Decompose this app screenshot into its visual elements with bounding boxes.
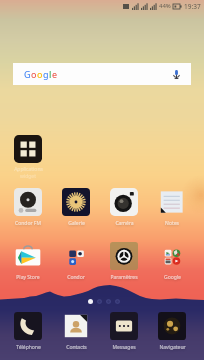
staticText: G	[24, 68, 31, 80]
staticText: Contacts	[66, 344, 87, 351]
staticText: widget	[20, 173, 36, 180]
button[interactable]: Play Store	[14, 242, 42, 281]
button[interactable]: Téléphone	[14, 312, 42, 351]
button[interactable]: Google	[158, 242, 186, 281]
staticText: Galerie	[68, 220, 85, 227]
button[interactable]: Voice search	[171, 69, 182, 80]
staticText: o	[31, 68, 37, 80]
button[interactable]	[88, 299, 120, 304]
staticText: Applications	[14, 166, 43, 173]
staticText: Navigateur	[159, 344, 186, 351]
staticText: l	[49, 68, 52, 80]
staticText: g	[43, 68, 49, 80]
button[interactable]: Galerie	[62, 188, 90, 227]
button[interactable]: Contacts	[62, 312, 90, 351]
staticText: Notes	[165, 220, 179, 227]
button[interactable]: Notes	[158, 188, 186, 227]
button[interactable]: Caméra	[110, 188, 138, 227]
staticText: 44%	[159, 2, 171, 10]
button[interactable]	[14, 135, 42, 163]
staticText: 19:37	[184, 2, 201, 11]
staticText: Paramètres	[110, 274, 138, 281]
staticText: Téléphone	[16, 344, 41, 351]
staticText: Google	[164, 274, 181, 281]
staticText: Caméra	[115, 220, 134, 227]
staticText: o	[37, 68, 43, 80]
staticText: Condor	[67, 274, 85, 281]
button[interactable]: Condor	[62, 242, 90, 281]
button[interactable]: Navigateur	[158, 312, 186, 351]
staticText: e	[52, 68, 58, 80]
staticText: Condor FM	[15, 220, 41, 227]
button[interactable]: Messages	[110, 312, 138, 351]
button[interactable]: G	[13, 63, 191, 85]
staticText: Play Store	[16, 274, 40, 281]
button[interactable]: Condor FM	[14, 188, 42, 227]
staticText: Messages	[112, 344, 136, 351]
button[interactable]: Paramètres	[110, 242, 138, 281]
